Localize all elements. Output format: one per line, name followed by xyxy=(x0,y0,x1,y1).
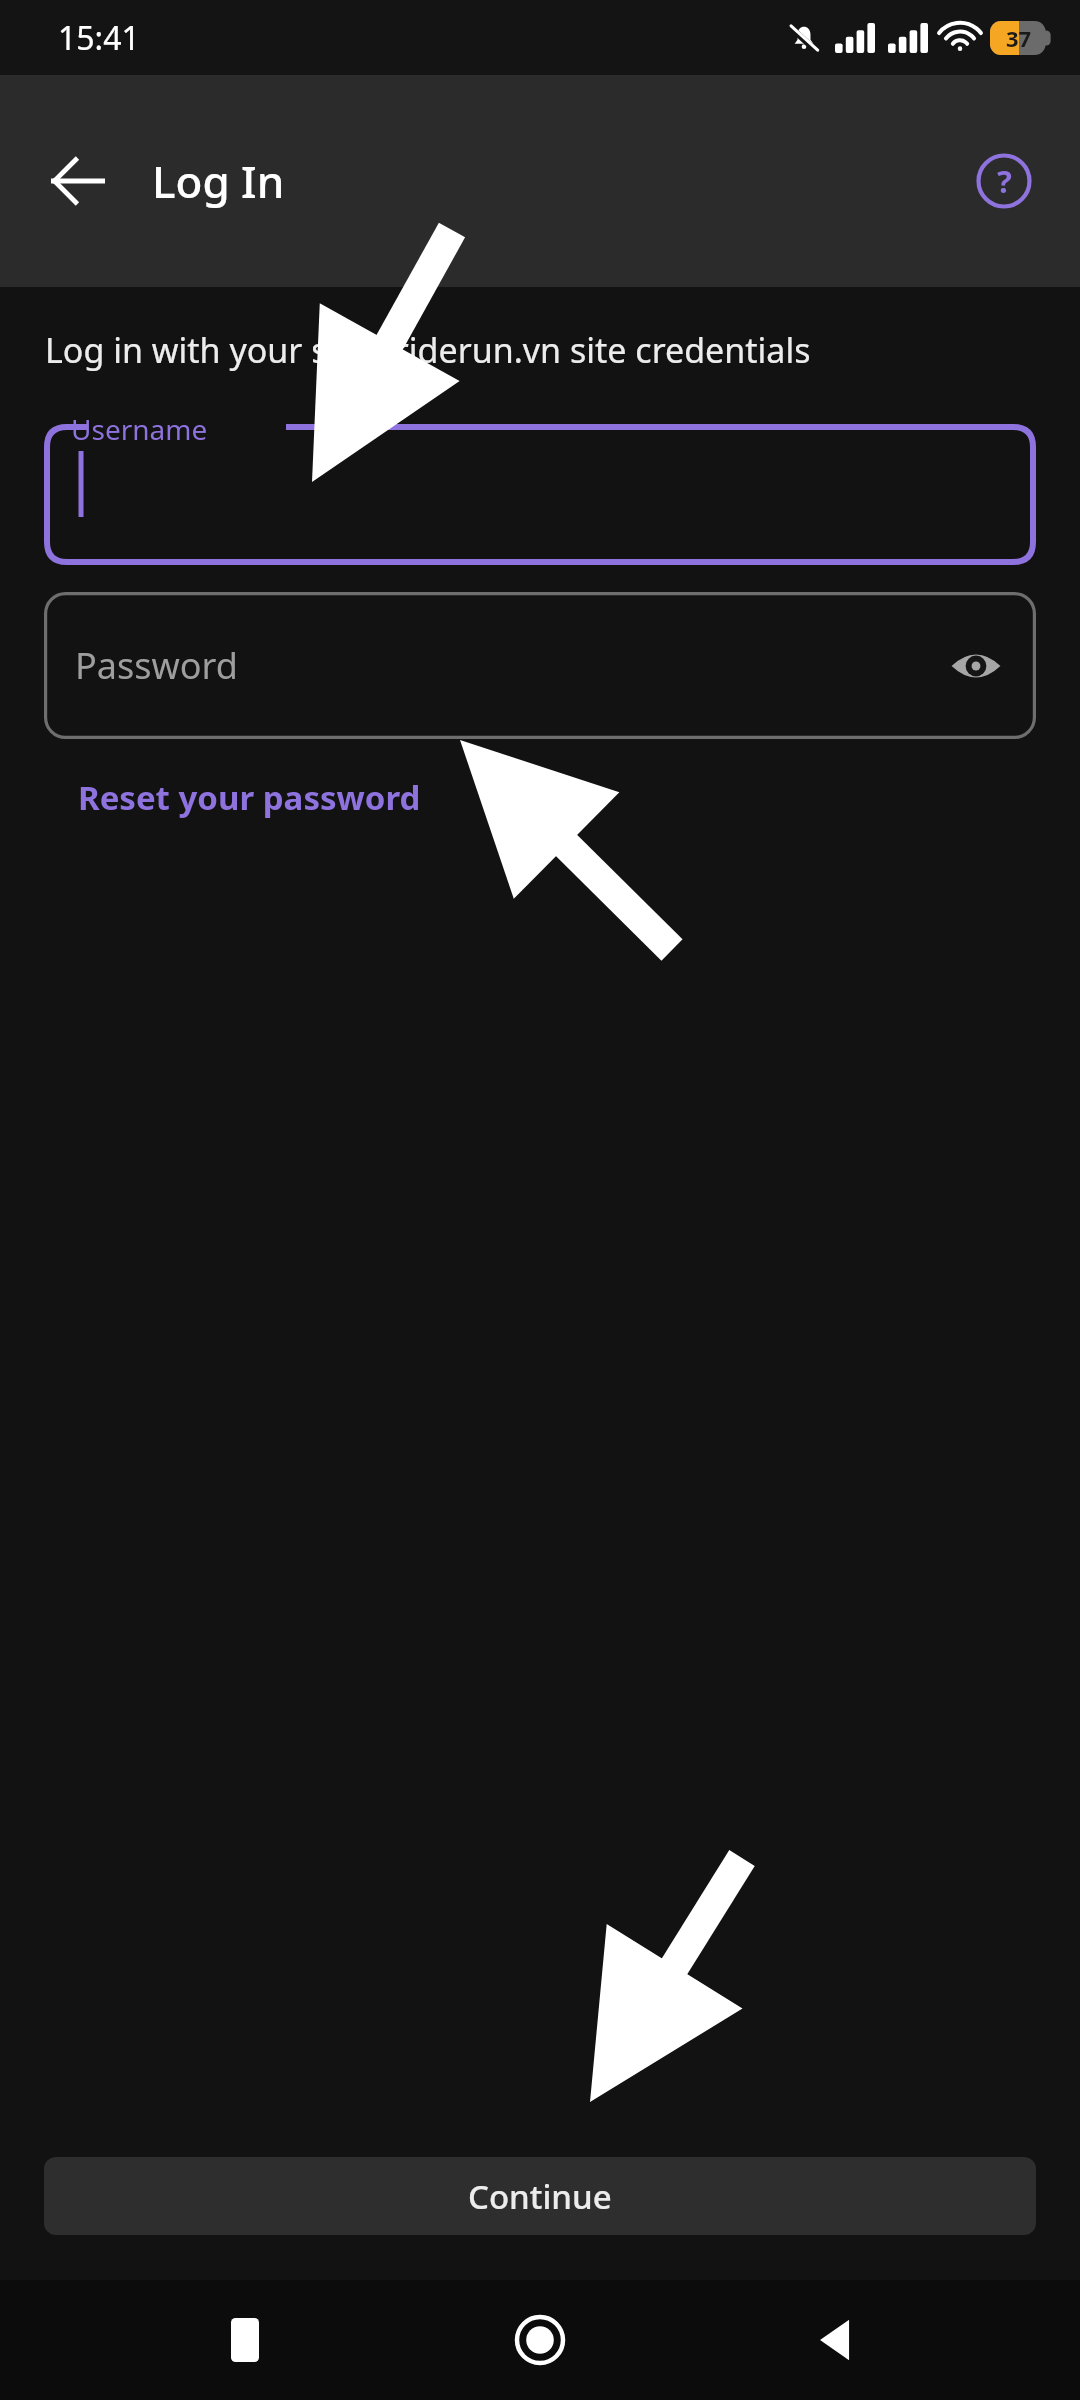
button[interactable]: Reset your password xyxy=(62,765,437,830)
button[interactable]: Help xyxy=(960,137,1048,225)
staticText: Username xyxy=(71,410,208,448)
staticText: Log In xyxy=(152,151,285,211)
button[interactable]: Home xyxy=(490,2290,590,2390)
button[interactable]: Recents xyxy=(195,2290,295,2390)
staticText: Password xyxy=(75,641,238,690)
staticText: 37 xyxy=(1006,23,1032,53)
button[interactable]: Password xyxy=(44,592,1036,739)
staticText: ? xyxy=(997,160,1012,202)
button[interactable]: Continue xyxy=(44,2157,1036,2235)
button[interactable]: Show password xyxy=(934,624,1018,708)
staticText: Reset your password xyxy=(78,775,421,820)
staticText: Log in with your swimriderun.vn site cre… xyxy=(45,327,811,373)
staticText: Continue xyxy=(468,2174,612,2219)
button[interactable]: Back xyxy=(30,133,126,229)
button[interactable]: Username xyxy=(44,415,1036,565)
staticText: 15:41 xyxy=(58,16,140,60)
button[interactable]: Back xyxy=(785,2290,885,2390)
